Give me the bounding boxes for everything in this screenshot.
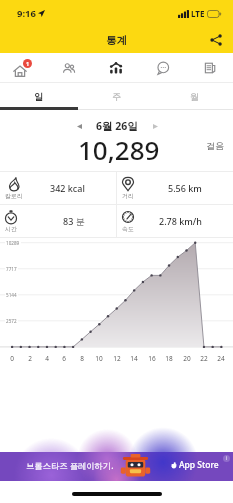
staticText: 월 xyxy=(190,91,199,102)
staticText: 20 xyxy=(180,354,194,363)
button[interactable]: Home xyxy=(0,53,46,82)
staticText: 거리 xyxy=(122,192,134,200)
staticText: 7717 xyxy=(6,266,17,272)
staticText: 18 xyxy=(162,354,176,363)
staticText: 10,289 xyxy=(78,132,160,166)
staticText: 0 xyxy=(5,354,19,363)
staticText: 342 kcal xyxy=(50,182,85,194)
button[interactable]: 주 xyxy=(77,83,155,110)
button[interactable]: 칼로리 xyxy=(0,172,116,204)
button[interactable]: 브롤스타즈 플레이하기. xyxy=(0,452,233,481)
staticText: i xyxy=(226,455,228,462)
staticText: 2 xyxy=(23,354,37,363)
staticText: 14 xyxy=(127,354,141,363)
button[interactable]: 일 xyxy=(0,83,77,110)
staticText: 83 분 xyxy=(63,215,85,227)
staticText: 24 xyxy=(214,354,228,363)
button[interactable]: 속도 xyxy=(117,205,233,237)
staticText: App Store xyxy=(179,459,219,471)
staticText: 속도 xyxy=(122,225,134,233)
staticText: 일 xyxy=(34,91,43,102)
staticText: 2572 xyxy=(6,318,17,324)
staticText: 시간 xyxy=(5,225,17,233)
button[interactable]: Feed xyxy=(186,53,233,82)
button[interactable]: 시간 xyxy=(0,205,116,237)
staticText: 22 xyxy=(197,354,211,363)
staticText: 12 xyxy=(110,354,124,363)
staticText: 16 xyxy=(145,354,159,363)
button[interactable]: 거리 xyxy=(117,172,233,204)
staticText: 통계 xyxy=(106,34,127,47)
staticText: 2.78 km/h xyxy=(159,215,202,227)
button[interactable]: Chat xyxy=(139,53,186,82)
staticText: 칼로리 xyxy=(5,192,23,200)
staticText: 10 xyxy=(92,354,106,363)
staticText: 1 xyxy=(26,60,30,67)
staticText: 8 xyxy=(75,354,89,363)
button[interactable]: Next day xyxy=(147,118,163,134)
staticText: 6 xyxy=(57,354,71,363)
button[interactable]: Friends xyxy=(46,53,92,82)
button[interactable]: Previous day xyxy=(71,118,87,134)
button[interactable]: Statistics xyxy=(92,53,139,82)
button[interactable]: Share xyxy=(206,30,226,50)
staticText: LTE xyxy=(191,8,205,19)
staticText: 6월 26일 xyxy=(96,119,138,133)
staticText: 5.56 km xyxy=(168,182,202,194)
staticText: 걸음 xyxy=(206,140,224,151)
staticText: 주 xyxy=(112,91,121,102)
staticText: 9:16 xyxy=(17,7,36,20)
staticText: 브롤스타즈 플레이하기. xyxy=(26,460,114,471)
staticText: 4 xyxy=(40,354,54,363)
button[interactable]: 월 xyxy=(155,83,233,110)
staticText: 10289 xyxy=(6,240,20,246)
staticText: 5144 xyxy=(6,292,17,298)
